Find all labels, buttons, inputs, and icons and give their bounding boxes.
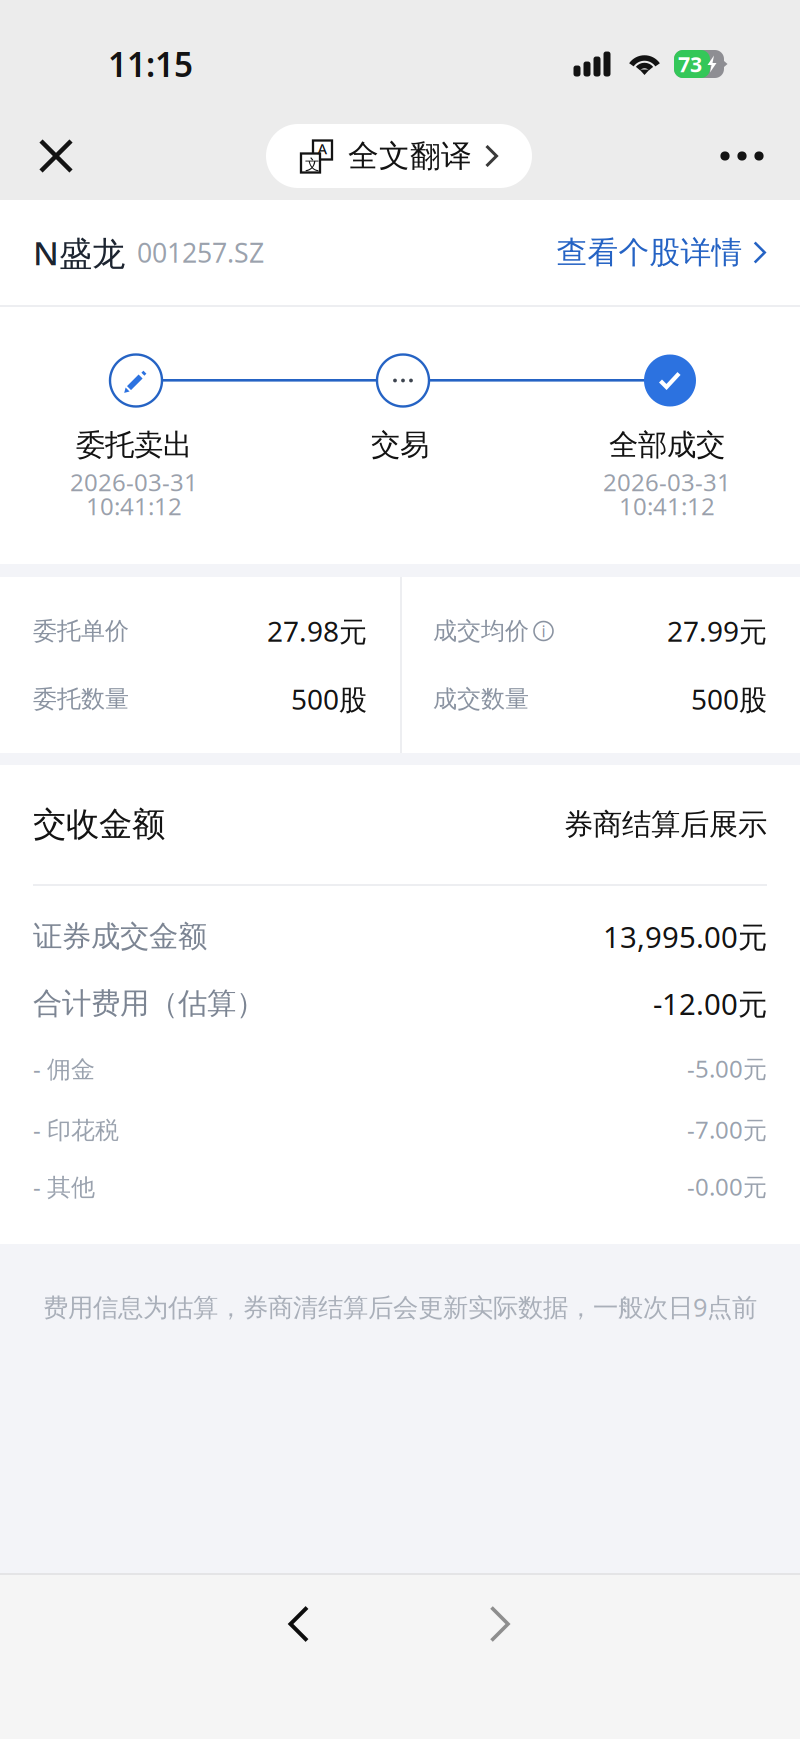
staticText: 合计费用（估算）	[33, 985, 265, 1021]
staticText: 13,995.00元	[603, 917, 767, 956]
staticText: 券商结算后展示	[564, 806, 767, 842]
button[interactable]: Close	[12, 112, 100, 200]
staticText: 10:41:12	[86, 490, 182, 522]
staticText: 27.99元	[667, 612, 767, 650]
staticText: i	[541, 620, 545, 642]
staticText: 全文翻译	[348, 137, 472, 175]
staticText: 证券成交金额	[33, 918, 207, 954]
staticText: 73	[678, 50, 702, 78]
staticText: 成交数量	[433, 684, 529, 714]
staticText: 500股	[691, 680, 767, 718]
staticText: 费用信息为估算，券商清结算后会更新实际数据，一般次日9点前	[43, 1290, 757, 1324]
staticText: -7.00元	[687, 1114, 767, 1145]
staticText: -12.00元	[653, 984, 767, 1023]
staticText: 11:15	[108, 42, 193, 86]
staticText: 全部成交	[609, 427, 725, 463]
staticText: 委托卖出	[76, 427, 192, 463]
staticText: A	[317, 139, 327, 158]
staticText: -0.00元	[687, 1171, 767, 1202]
button[interactable]: Forward	[455, 1584, 545, 1664]
button[interactable]: 查看个股详情	[556, 234, 767, 271]
staticText: 2026-03-31	[603, 466, 731, 498]
staticText: 10:41:12	[619, 490, 715, 522]
staticText: 交收金额	[33, 804, 165, 845]
staticText: 交易	[371, 427, 429, 463]
button[interactable]: A	[266, 124, 532, 188]
button[interactable]: Back	[254, 1584, 344, 1664]
staticText: 成交均价	[433, 616, 529, 646]
staticText: 2026-03-31	[70, 466, 198, 498]
staticText: 委托数量	[33, 684, 129, 714]
staticText: 27.98元	[267, 612, 367, 650]
staticText: -5.00元	[687, 1053, 767, 1084]
staticText: 查看个股详情	[556, 234, 742, 271]
staticText: - 其他	[33, 1171, 95, 1202]
staticText: 文	[305, 155, 320, 173]
staticText: N盛龙	[33, 230, 125, 275]
staticText: - 佣金	[33, 1053, 95, 1084]
staticText: - 印花税	[33, 1114, 119, 1145]
staticText: 委托单价	[33, 616, 129, 646]
staticText: 001257.SZ	[137, 235, 264, 270]
button[interactable]: More options	[698, 112, 786, 200]
staticText: 500股	[291, 680, 367, 718]
